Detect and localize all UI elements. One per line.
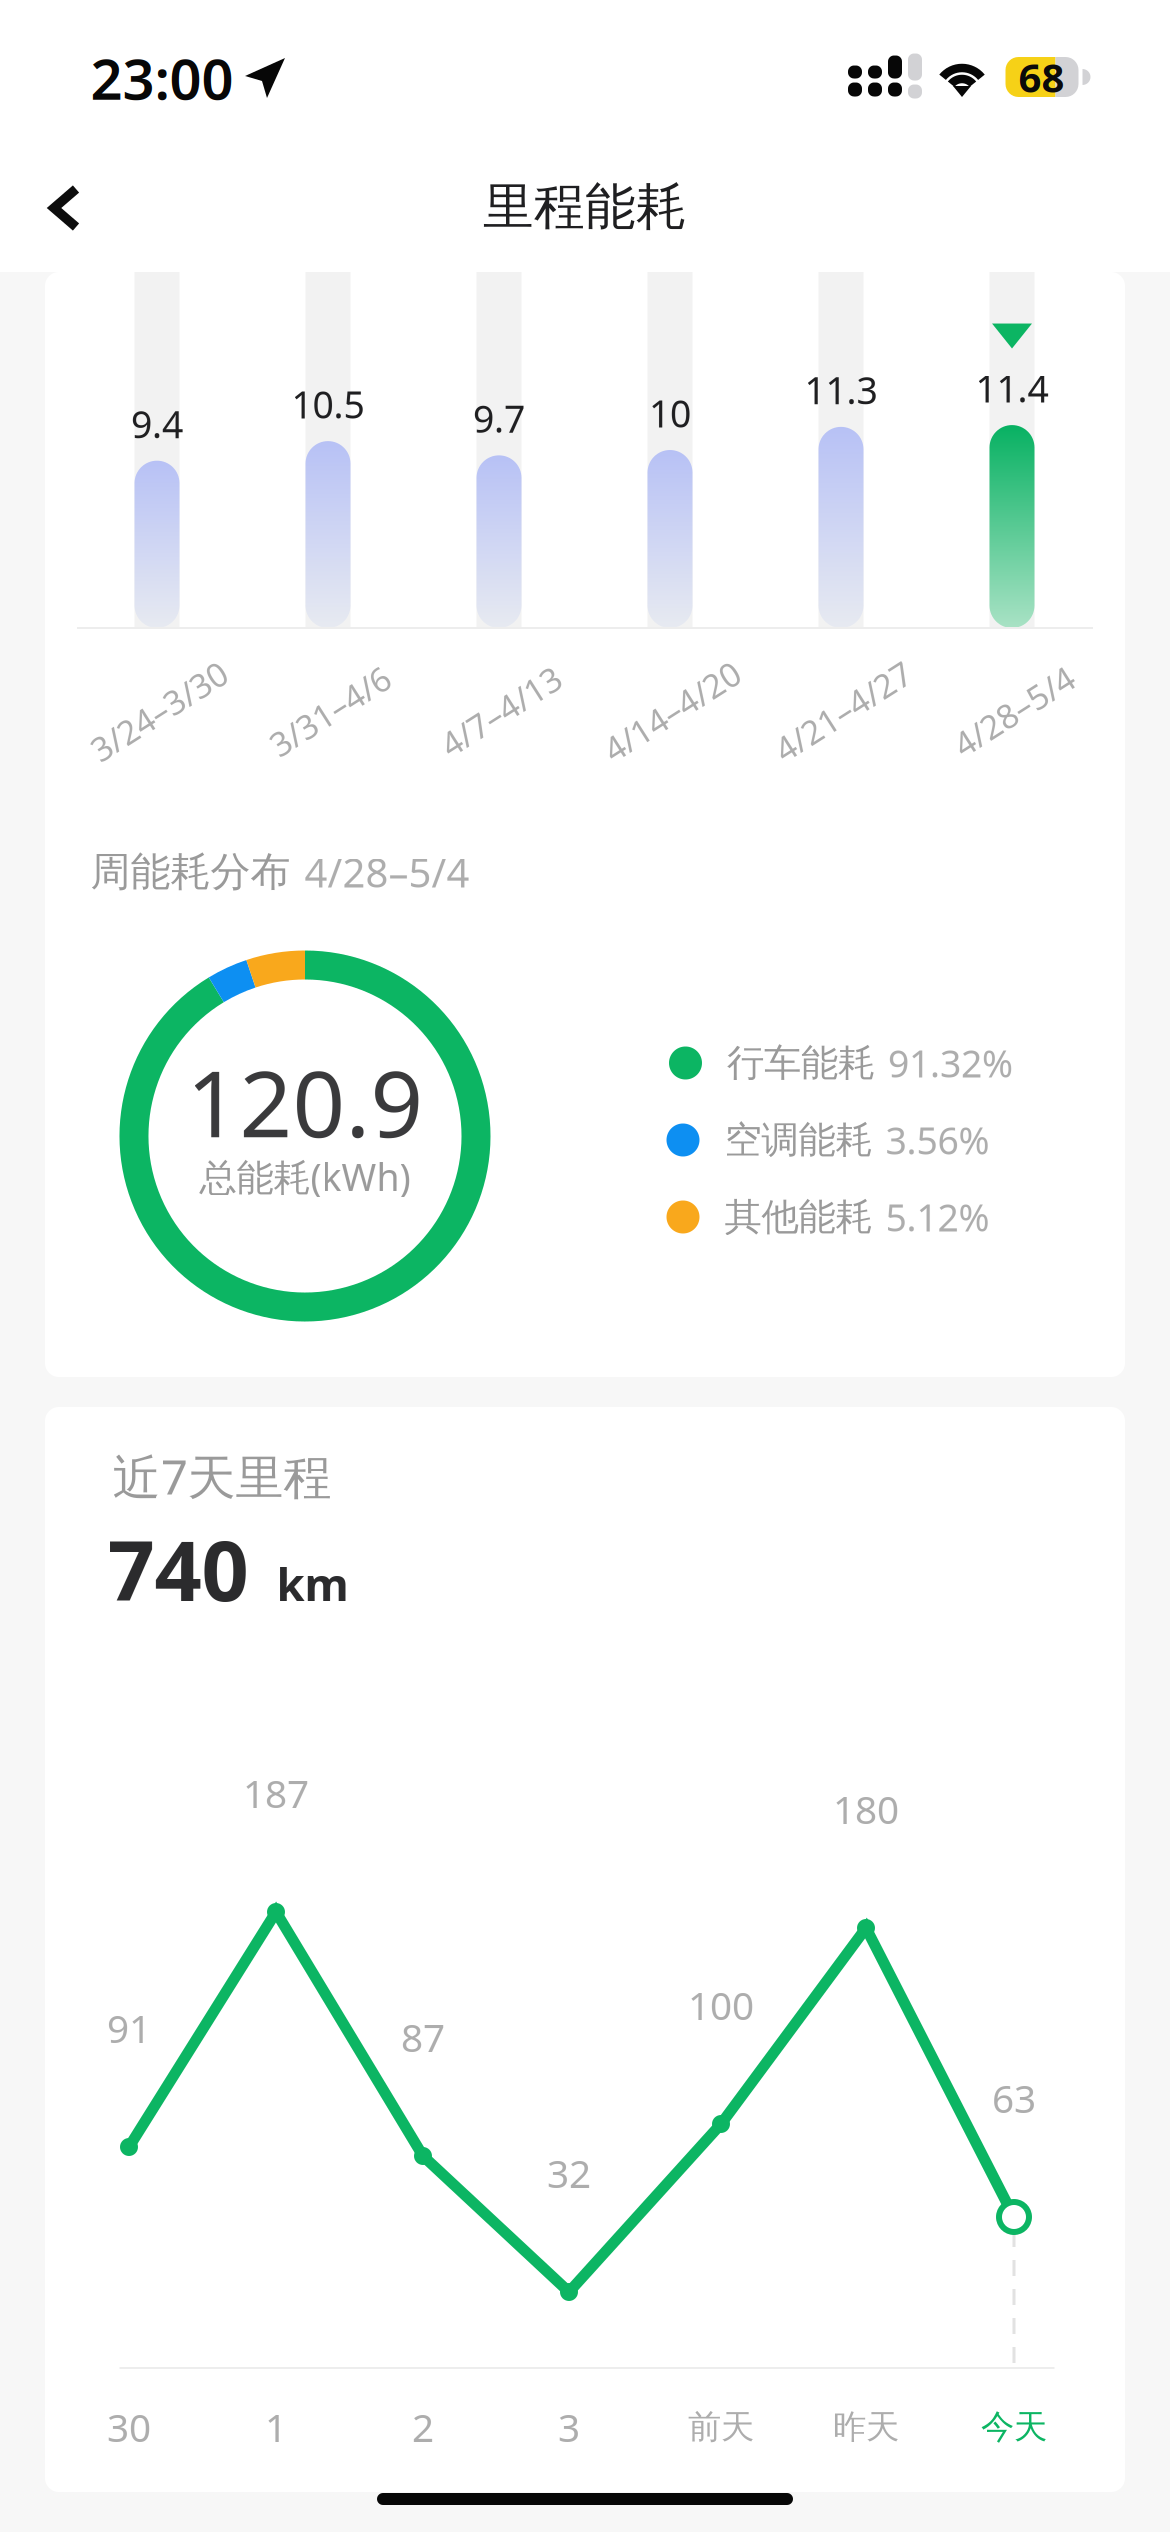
staticText: 4/21–4/27 xyxy=(765,689,920,733)
staticText: 187 xyxy=(243,1767,309,1819)
staticText: 9.4 xyxy=(131,399,183,448)
staticText: 9.7 xyxy=(473,394,525,443)
staticText: 120.9 xyxy=(186,1040,423,1163)
staticText: 里程能耗 xyxy=(483,176,687,238)
staticText: 4/28–5/4 xyxy=(304,845,469,898)
staticText: 3.56% xyxy=(885,1115,989,1165)
staticText: 1 xyxy=(265,2401,287,2453)
staticText: 昨天 xyxy=(833,2406,899,2447)
staticText: 5.12% xyxy=(885,1192,989,1242)
staticText: km xyxy=(276,1553,348,1614)
staticText: 87 xyxy=(401,2011,445,2063)
staticText: 11.4 xyxy=(975,363,1048,413)
button[interactable]: 返回 xyxy=(1,143,129,271)
staticText: 11.3 xyxy=(804,365,877,415)
staticText: 空调能耗 xyxy=(724,1117,872,1163)
staticText: 近7天里程 xyxy=(112,1444,331,1508)
staticText: 2 xyxy=(412,2401,434,2453)
staticText: 3/24–3/30 xyxy=(81,689,236,733)
staticText: 3/31–4/6 xyxy=(262,689,398,733)
staticText: 4/14–4/20 xyxy=(594,689,749,733)
staticText: 今天 xyxy=(981,2406,1047,2447)
staticText: 91 xyxy=(107,2002,151,2054)
staticText: 3 xyxy=(558,2401,580,2453)
staticText: 周能耗分布 xyxy=(90,847,290,896)
staticText: 91.32% xyxy=(888,1038,1013,1088)
staticText: 180 xyxy=(833,1783,899,1835)
staticText: 其他能耗 xyxy=(724,1194,872,1240)
staticText: 10 xyxy=(649,388,691,438)
staticText: 100 xyxy=(688,1979,754,2031)
staticText: 32 xyxy=(547,2147,591,2199)
staticText: 10.5 xyxy=(291,379,364,429)
staticText: 63 xyxy=(992,2072,1036,2124)
staticText: 总能耗(kWh) xyxy=(199,1152,410,1201)
staticText: 前天 xyxy=(688,2406,754,2447)
staticText: 4/28–5/4 xyxy=(946,689,1082,733)
staticText: 行车能耗 xyxy=(727,1040,875,1086)
staticText: 740 xyxy=(107,1514,248,1624)
staticText: 30 xyxy=(107,2401,151,2453)
staticText: 68 xyxy=(1018,50,1064,103)
staticText: 23:00 xyxy=(90,41,233,115)
staticText: 4/7–4/13 xyxy=(433,689,569,733)
